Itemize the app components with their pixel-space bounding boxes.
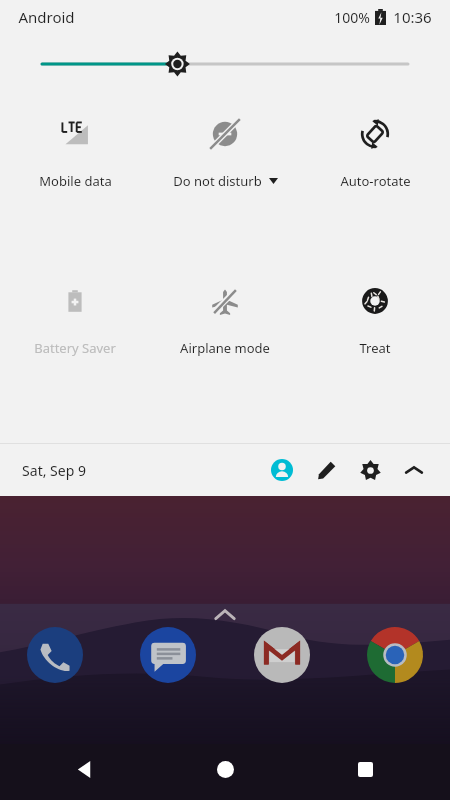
staticText: Treat [359,339,391,357]
button[interactable]: Settings [348,448,392,492]
button[interactable]: Treat [300,276,450,361]
button[interactable]: User [260,448,304,492]
button[interactable]: Brightness [42,47,408,81]
button[interactable]: Mobile data [0,109,150,194]
button[interactable]: Do not disturb [150,109,300,194]
button[interactable]: Airplane mode [150,276,300,361]
staticText: Sat, Sep 9 [22,461,86,480]
button[interactable]: Home [200,744,250,794]
staticText: Android [18,7,75,27]
button[interactable]: Phone [24,624,86,686]
button[interactable]: Back [60,744,110,794]
button[interactable]: Auto-rotate [300,109,450,194]
button[interactable]: Open app drawer [205,596,245,636]
button[interactable]: Chrome [364,624,426,686]
staticText: Battery Saver [34,339,116,357]
staticText: Airplane mode [180,339,270,357]
staticText: Mobile data [39,172,112,190]
button[interactable]: Battery Saver [0,276,150,361]
staticText: Do not disturb [173,172,262,190]
button[interactable]: Messages [137,624,199,686]
button[interactable]: Recents [340,744,390,794]
staticText: 10:36 [393,7,432,27]
staticText: Auto-rotate [340,172,411,190]
staticText: 100% [334,8,370,27]
button[interactable]: Collapse [392,448,436,492]
button[interactable]: Gmail [251,624,313,686]
button[interactable]: Edit [304,448,348,492]
